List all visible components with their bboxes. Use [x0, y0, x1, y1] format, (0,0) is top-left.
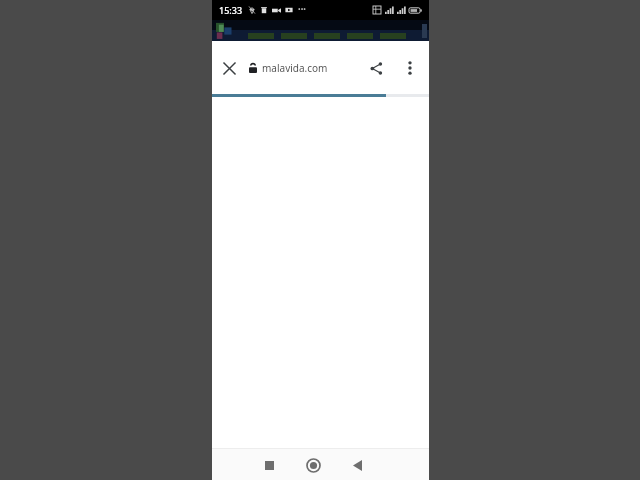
button[interactable]: Home — [300, 452, 326, 478]
button[interactable]: Recent apps — [256, 452, 282, 478]
button[interactable]: More options — [393, 51, 427, 85]
staticText: ••• — [298, 5, 306, 15]
staticText: 15:33 — [219, 4, 243, 16]
button[interactable]: Back — [344, 452, 370, 478]
button[interactable]: malavida.com — [249, 41, 359, 94]
button[interactable]: Share — [359, 51, 393, 85]
button[interactable]: Close — [212, 51, 246, 85]
staticText: malavida.com — [262, 61, 328, 75]
